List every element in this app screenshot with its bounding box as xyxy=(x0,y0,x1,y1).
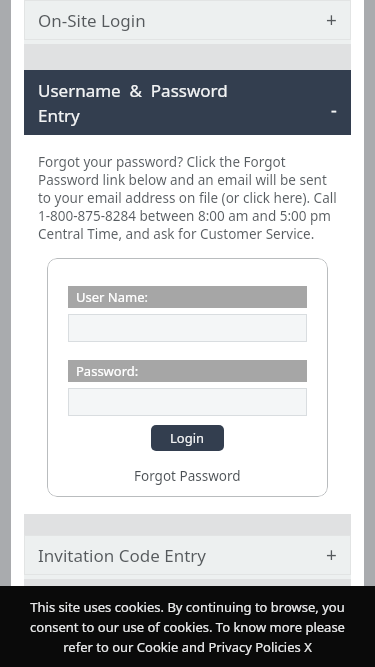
staticText: This site uses cookies. By continuing to… xyxy=(26,598,349,656)
staticText: User Name: xyxy=(76,288,148,306)
staticText: Login xyxy=(170,429,205,447)
staticText: + xyxy=(326,542,337,568)
button[interactable]: On-Site Login xyxy=(24,0,351,40)
staticText: - xyxy=(331,98,337,123)
staticText: Password: xyxy=(76,362,139,380)
button[interactable] xyxy=(68,388,307,416)
staticText: Invitation Code Entry xyxy=(38,544,206,567)
staticText: + xyxy=(326,7,337,33)
button[interactable]: Forgot Password xyxy=(134,467,241,485)
button[interactable]: Invitation Code Entry xyxy=(24,535,351,575)
staticText: Entry xyxy=(38,104,80,127)
button[interactable]: Login xyxy=(151,425,224,451)
staticText: Forgot Password xyxy=(134,467,241,485)
button[interactable]: Username & Password xyxy=(24,70,351,135)
button[interactable] xyxy=(68,314,307,342)
staticText: On-Site Login xyxy=(38,9,146,32)
button[interactable]: This site uses cookies. By continuing to… xyxy=(0,586,375,667)
staticText: Forgot your password? Click the Forgot P… xyxy=(38,153,337,243)
staticText: Username & Password xyxy=(38,79,228,102)
